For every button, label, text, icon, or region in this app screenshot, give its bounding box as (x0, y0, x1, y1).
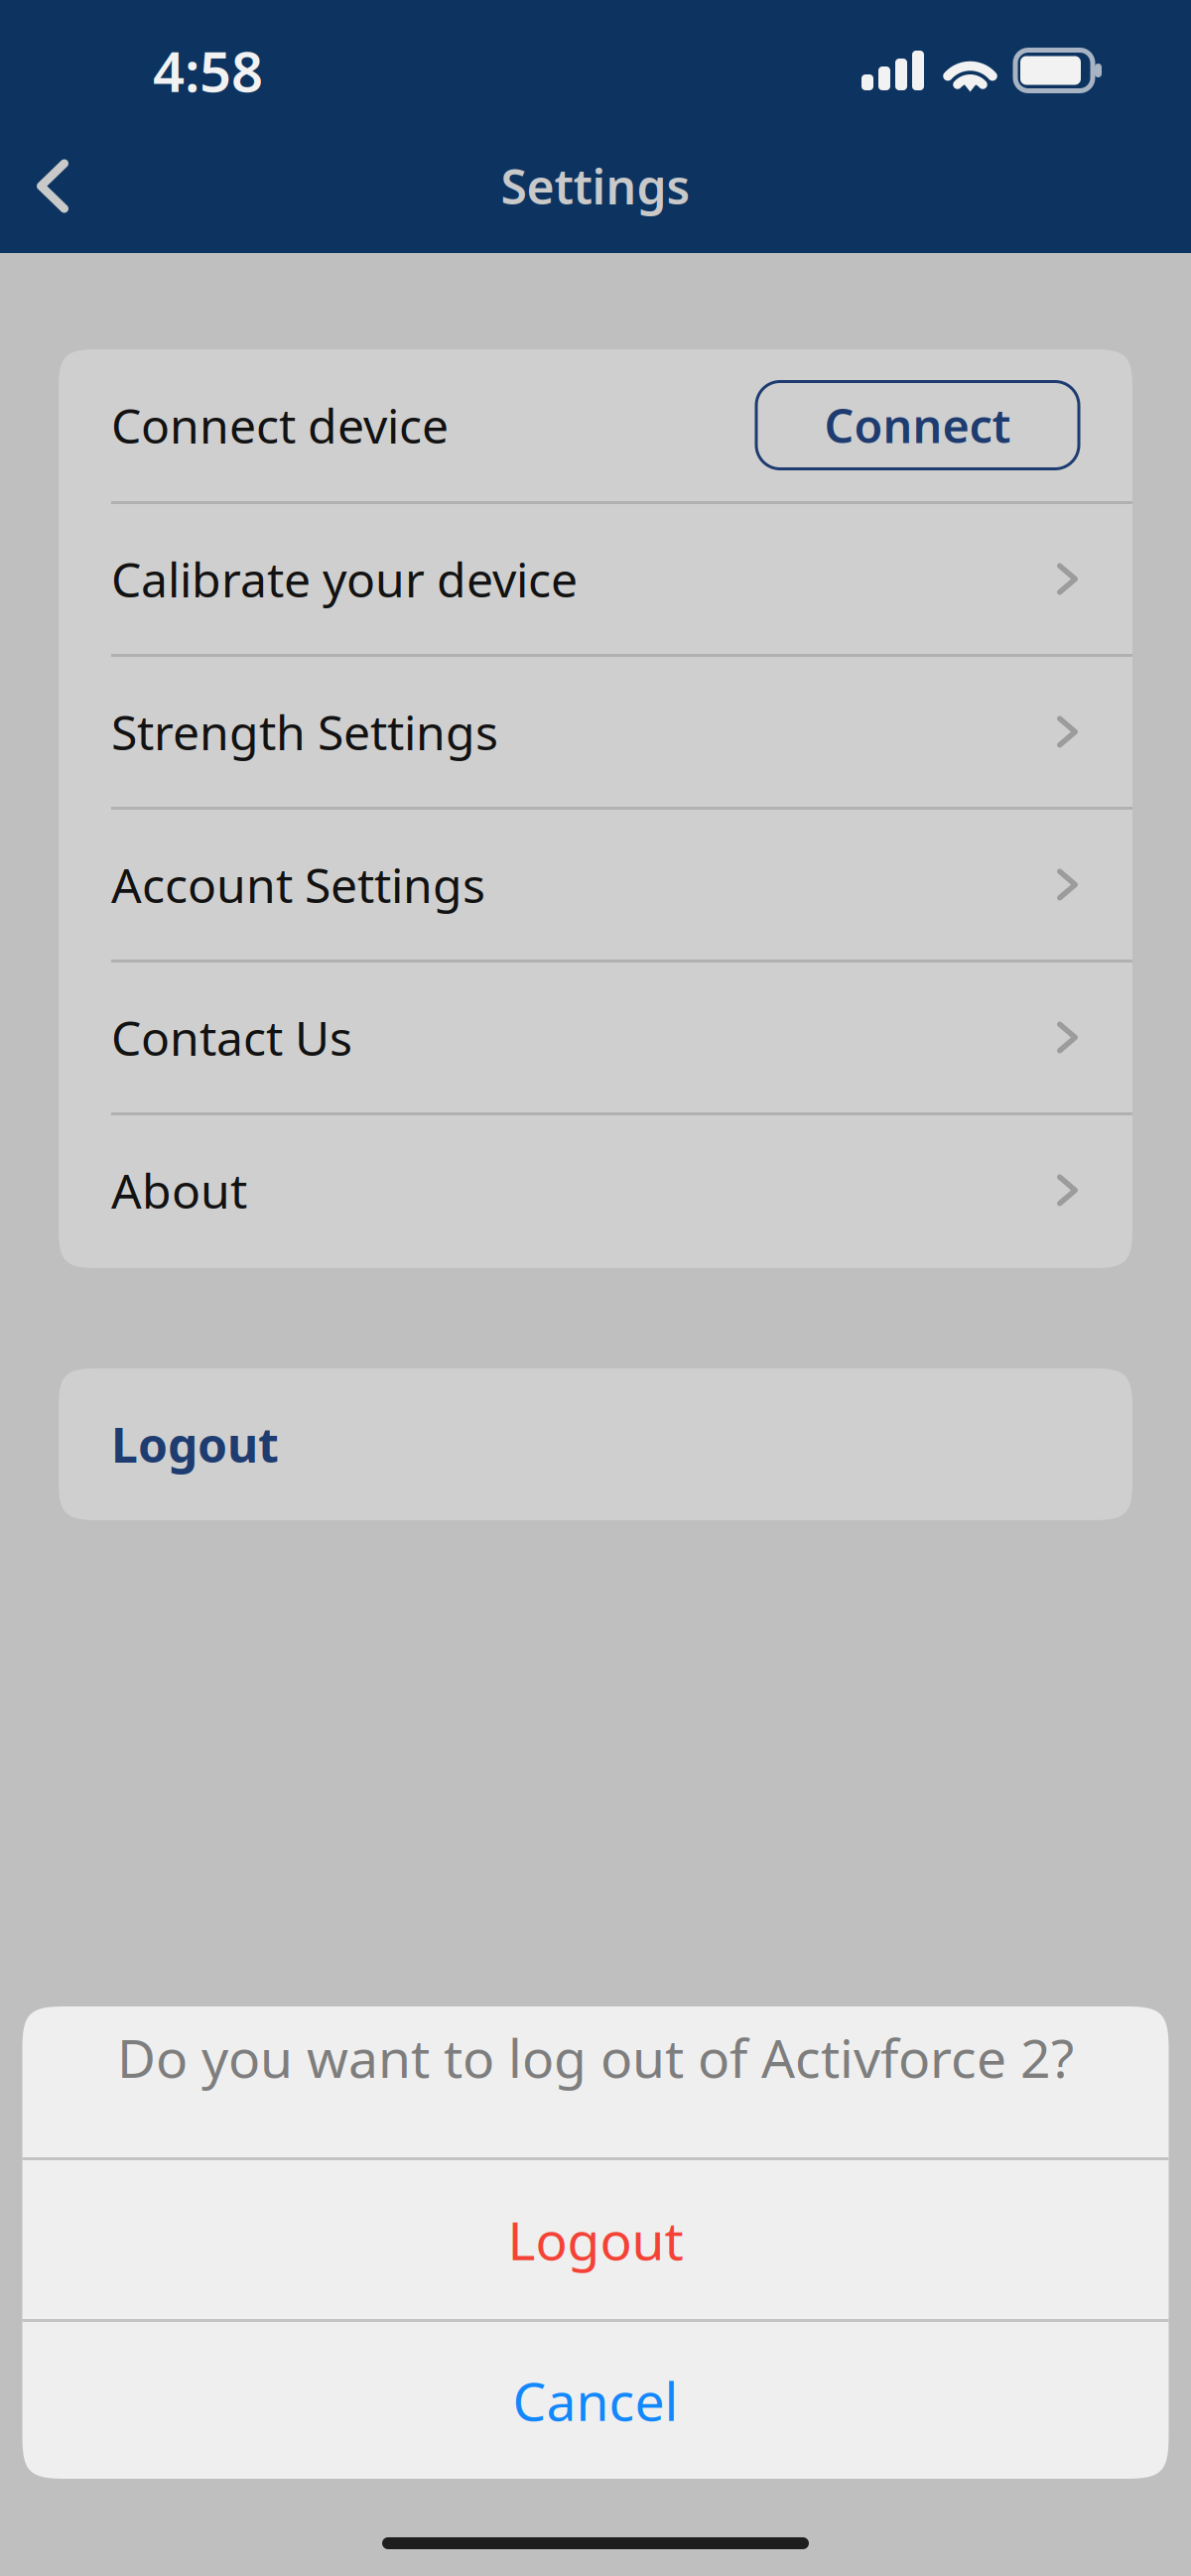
button[interactable]: About (59, 1115, 1132, 1265)
button[interactable]: Contact Us (59, 963, 1132, 1112)
button[interactable]: Logout (59, 1368, 1132, 1520)
staticText: 4:58 (153, 34, 263, 107)
staticText: Logout (111, 1413, 279, 1476)
button[interactable]: Calibrate your device (59, 504, 1132, 654)
button[interactable]: Account Settings (59, 810, 1132, 960)
staticText: Settings (501, 154, 690, 218)
button[interactable]: Strength Settings (59, 657, 1132, 807)
staticText: Account Settings (111, 853, 485, 916)
button[interactable]: Back (0, 124, 96, 248)
staticText: Logout (508, 2204, 683, 2275)
staticText: Connect (824, 394, 1011, 456)
staticText: Connect device (111, 394, 449, 457)
button[interactable]: Logout (22, 2160, 1169, 2319)
staticText: Do you want to log out of Activforce 2? (117, 2022, 1074, 2093)
button[interactable]: Cancel (22, 2322, 1169, 2479)
staticText: Cancel (513, 2365, 678, 2435)
staticText: About (111, 1159, 247, 1222)
staticText: Strength Settings (111, 700, 498, 763)
staticText: Contact Us (111, 1006, 352, 1069)
staticText: Calibrate your device (111, 547, 578, 611)
button[interactable]: Connect device (59, 349, 1132, 501)
